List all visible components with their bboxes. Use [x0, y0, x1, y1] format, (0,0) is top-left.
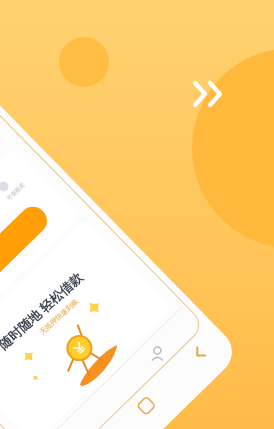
- button[interactable]: Skip: [190, 79, 225, 111]
- button[interactable]: [0, 201, 53, 332]
- staticText: 可借额度: [6, 182, 26, 202]
- staticText: 无抵押快速到账: [37, 295, 80, 338]
- staticText: 随时随地 轻松借款: [0, 264, 87, 357]
